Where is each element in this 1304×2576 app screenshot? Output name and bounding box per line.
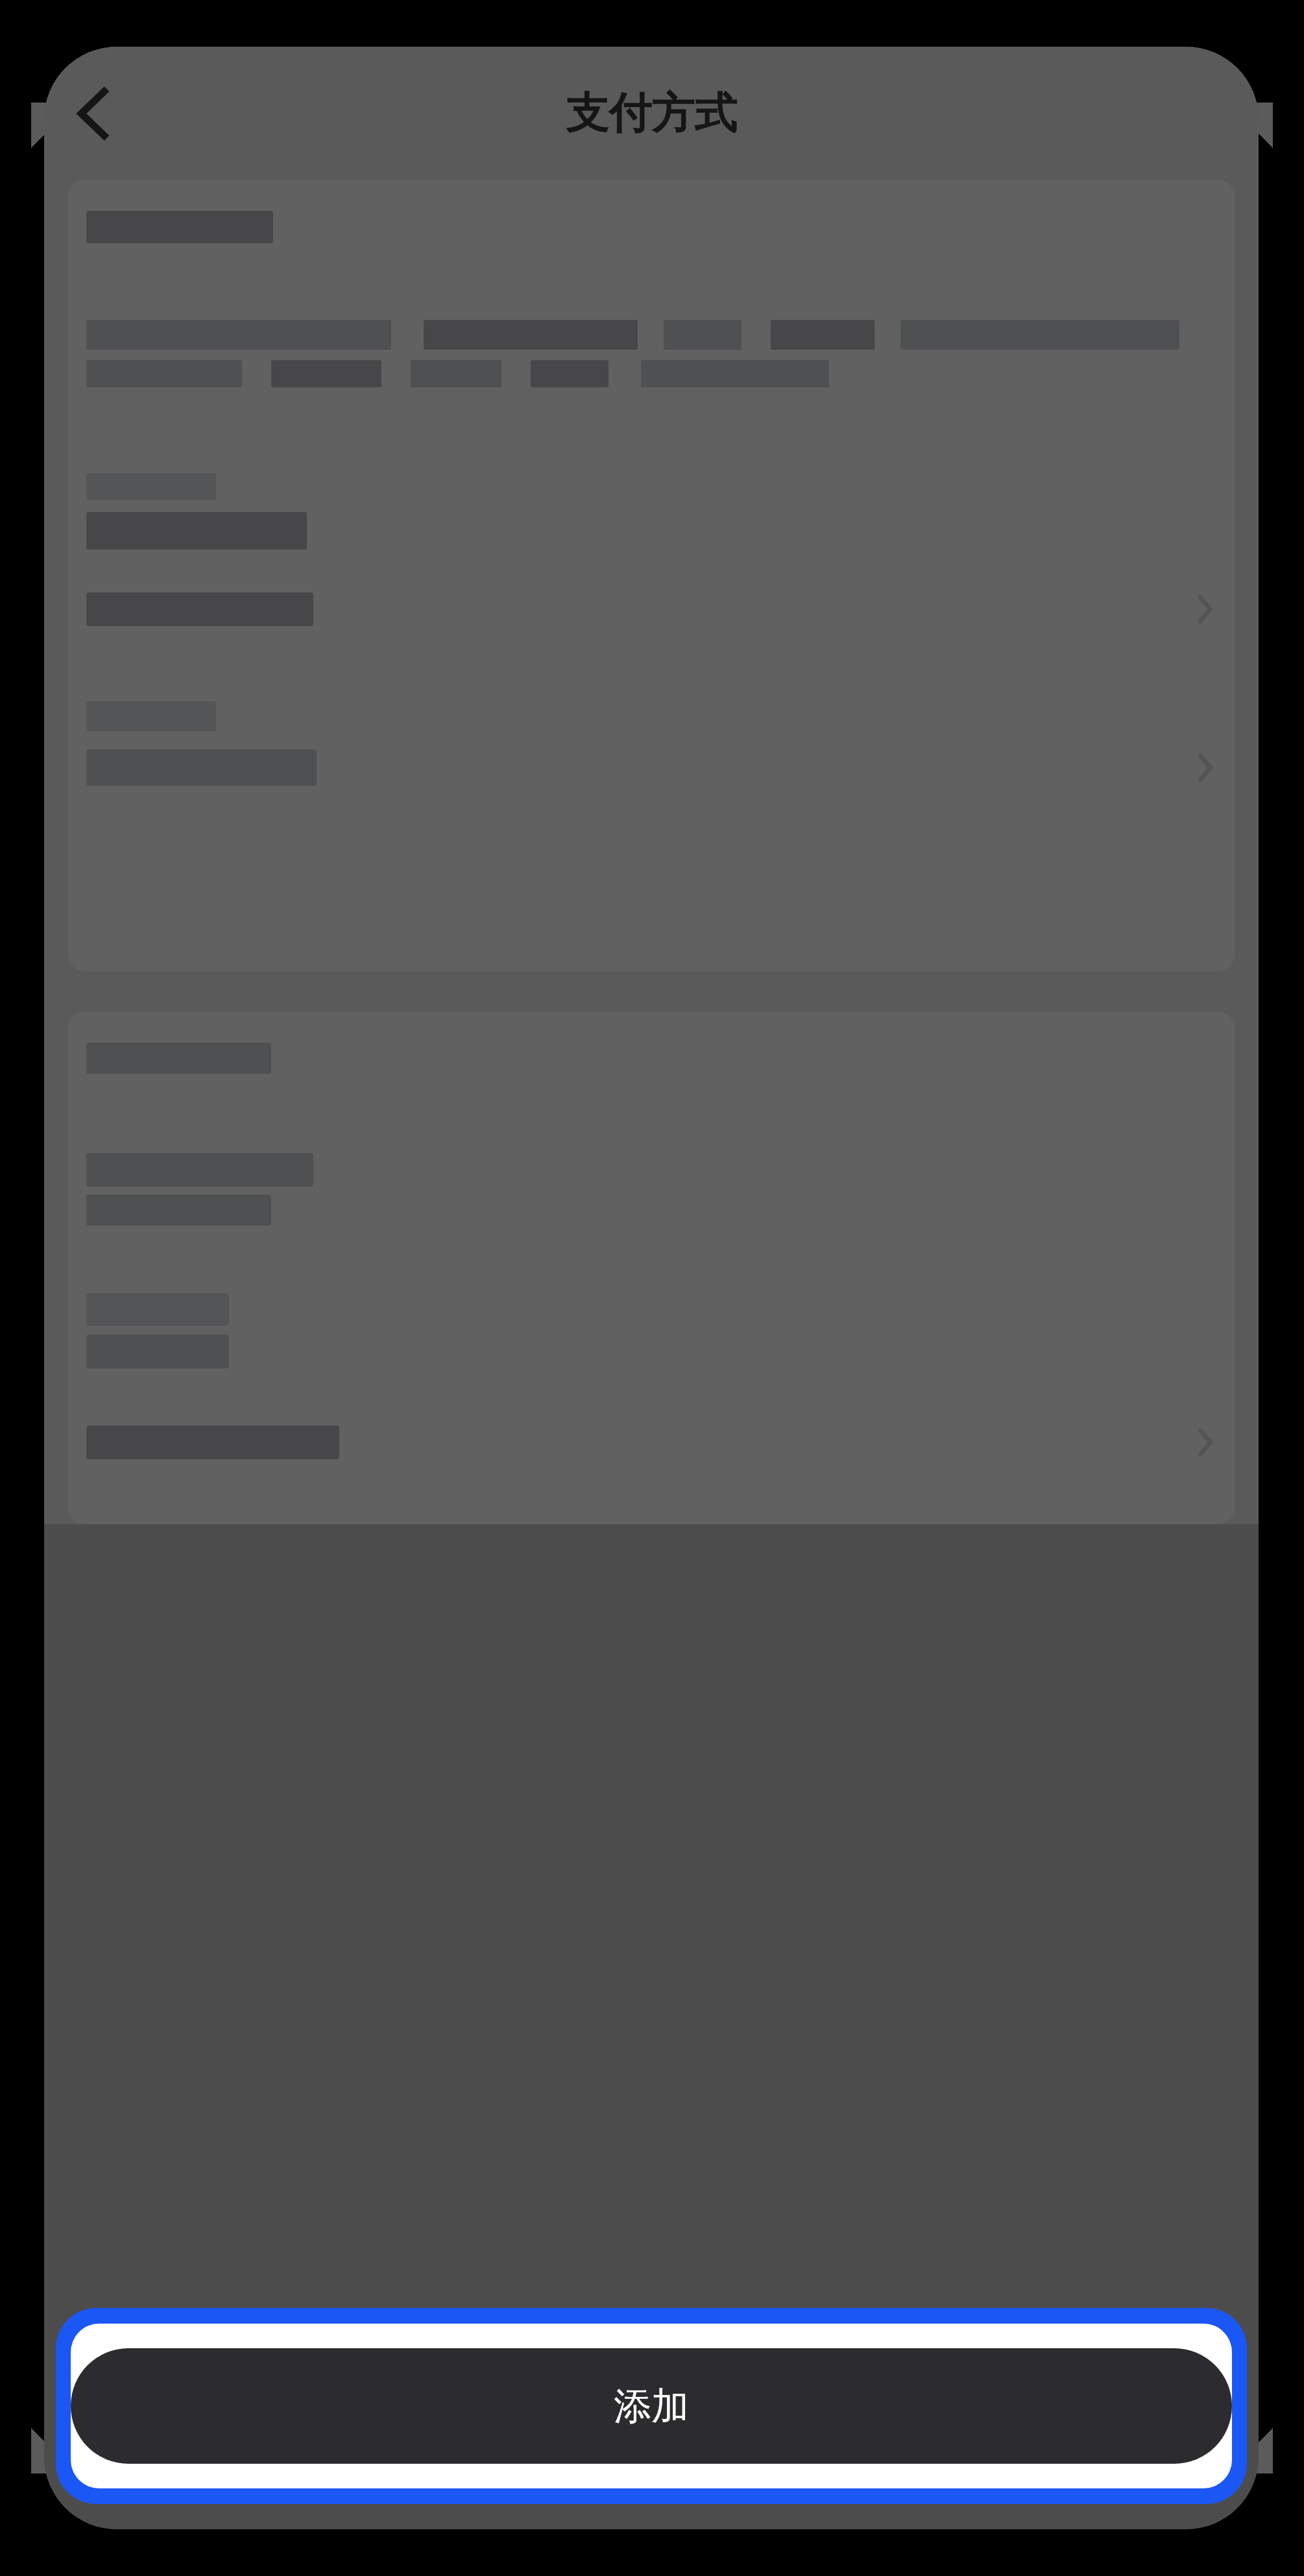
button[interactable]: Back — [58, 79, 128, 149]
staticText: 添加 — [614, 2383, 689, 2430]
button[interactable]: 添加 — [71, 2348, 1232, 2464]
button[interactable] — [68, 180, 1235, 971]
button[interactable] — [86, 749, 1214, 786]
button[interactable] — [86, 1426, 1214, 1459]
button[interactable] — [86, 592, 1214, 626]
staticText: 支付方式 — [566, 86, 737, 140]
button[interactable] — [68, 1012, 1235, 1524]
